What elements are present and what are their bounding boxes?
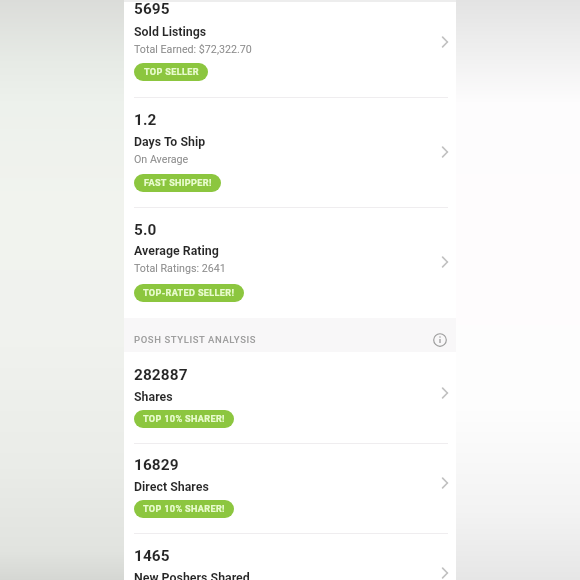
button[interactable]: 5.0: [124, 208, 456, 318]
button[interactable]: TOP-RATED SELLER!: [134, 284, 244, 302]
staticText: 282887: [134, 366, 188, 384]
staticText: TOP 10% SHARER!: [143, 414, 225, 425]
staticText: Average Rating: [134, 244, 219, 258]
button[interactable]: 282887: [124, 352, 456, 443]
other: Open details: [435, 32, 455, 52]
button[interactable]: TOP SELLER: [134, 63, 208, 81]
other: Open details: [435, 563, 455, 580]
button[interactable]: 1.2: [124, 98, 456, 208]
staticText: TOP SELLER: [144, 67, 199, 78]
button[interactable]: FAST SHIPPER!: [134, 174, 221, 192]
staticText: 1465: [134, 547, 170, 565]
staticText: On Average: [134, 153, 189, 166]
other: Open details: [435, 142, 455, 162]
staticText: Direct Shares: [134, 480, 209, 494]
button[interactable]: 16829: [124, 443, 456, 534]
button[interactable]: 1465: [124, 534, 456, 580]
staticText: 1.2: [134, 111, 157, 129]
staticText: Days To Ship: [134, 135, 206, 149]
staticText: Shares: [134, 390, 173, 404]
other: Open details: [435, 252, 455, 272]
staticText: New Poshers Shared: [134, 571, 250, 580]
staticText: POSH STYLIST ANALYSIS: [134, 334, 257, 345]
staticText: TOP 10% SHARER!: [143, 504, 225, 515]
staticText: FAST SHIPPER!: [144, 178, 212, 189]
staticText: TOP-RATED SELLER!: [143, 288, 235, 299]
button[interactable]: POSH STYLIST ANALYSIS: [124, 318, 456, 352]
staticText: 16829: [134, 456, 179, 474]
other: Open details: [435, 473, 455, 493]
staticText: 5695: [134, 0, 170, 18]
staticText: Sold Listings: [134, 25, 207, 39]
button[interactable]: 5695: [124, 0, 456, 98]
other: About Posh Stylist analysis: [432, 332, 448, 348]
button[interactable]: TOP 10% SHARER!: [134, 410, 234, 428]
button[interactable]: TOP 10% SHARER!: [134, 500, 234, 518]
staticText: 5.0: [134, 221, 157, 239]
staticText: Total Ratings: 2641: [134, 262, 226, 275]
staticText: Total Earned: $72,322.70: [134, 43, 252, 56]
other: Open details: [435, 383, 455, 403]
